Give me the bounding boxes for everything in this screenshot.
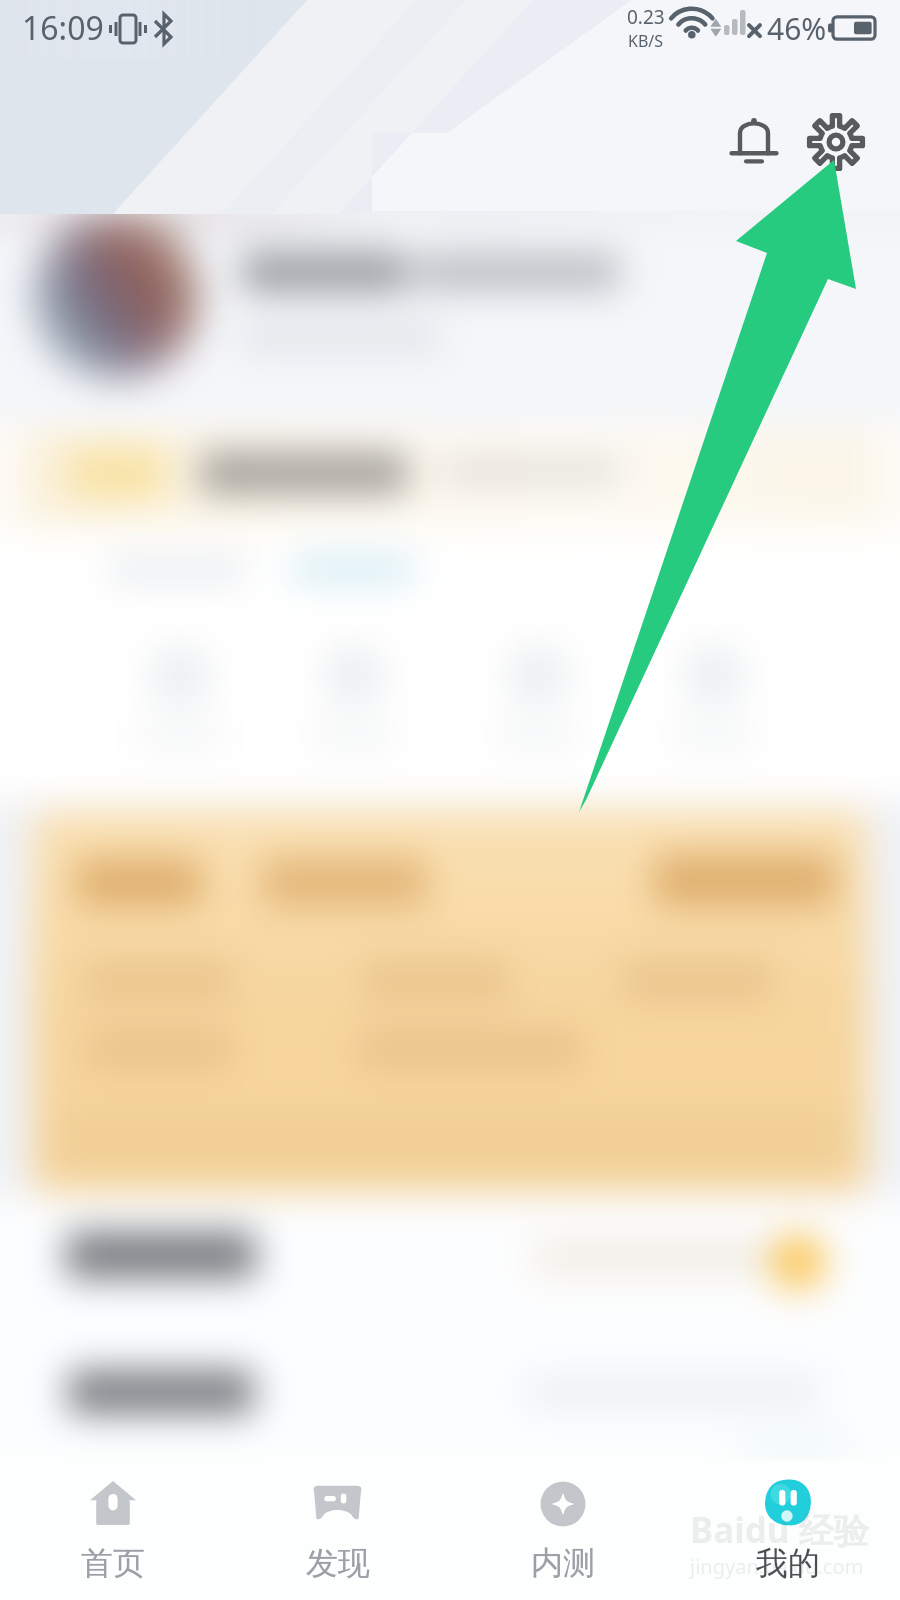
staticText: Baidu 经验 (690, 1506, 869, 1554)
staticText: 发现 (306, 1543, 370, 1583)
button[interactable]: 发现 (225, 1460, 450, 1600)
staticText: 0.23 (627, 4, 665, 30)
staticText: jingyan.baidu.com (690, 1553, 864, 1580)
staticText: 首页 (81, 1543, 145, 1583)
button[interactable]: 首页 (0, 1460, 225, 1600)
button[interactable]: 我的 (675, 1460, 900, 1600)
staticText: 我的 (756, 1543, 820, 1583)
button[interactable]: Notifications (716, 104, 792, 180)
staticText: 16:09 (22, 6, 104, 50)
staticText: KB/S (628, 30, 664, 52)
button[interactable]: Settings (798, 104, 874, 180)
staticText: 46% (767, 8, 827, 49)
button[interactable]: 内测 (450, 1460, 675, 1600)
staticText: 内测 (531, 1543, 595, 1583)
